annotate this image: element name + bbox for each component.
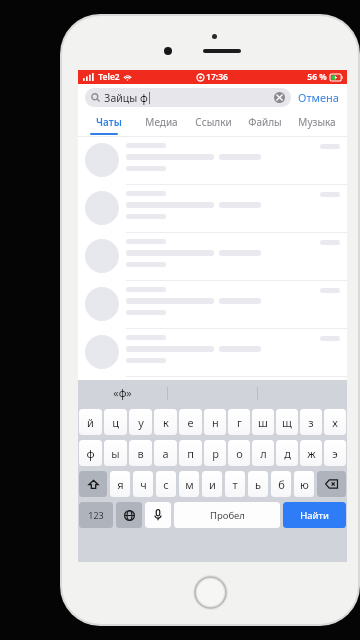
staticText: ы (111, 446, 120, 461)
button[interactable]: ь (248, 471, 268, 497)
staticText: т (232, 477, 238, 492)
button[interactable]: Dictation (145, 502, 171, 528)
staticText: в (137, 446, 144, 461)
staticText: Файлы (248, 115, 282, 129)
button[interactable]: а (154, 440, 177, 466)
button[interactable] (78, 137, 347, 184)
button[interactable]: я (110, 471, 130, 497)
staticText: о (236, 446, 243, 461)
staticText: н (212, 415, 219, 430)
button[interactable]: й (79, 409, 102, 435)
staticText: ц (112, 415, 119, 430)
staticText: «ф» (113, 386, 132, 400)
button[interactable]: в (129, 440, 152, 466)
staticText: ж (307, 446, 316, 461)
button[interactable]: Медиа (135, 111, 187, 133)
button[interactable]: Отмена (297, 87, 340, 108)
staticText: г (237, 415, 242, 430)
staticText: е (187, 415, 194, 430)
button[interactable]: Зайцы ф (85, 88, 291, 107)
staticText: Музыка (298, 115, 336, 129)
staticText: Чаты (96, 115, 122, 129)
button[interactable]: 123 (79, 502, 113, 528)
button[interactable]: «ф» (78, 380, 167, 406)
button[interactable]: Ссылки (187, 111, 239, 133)
button[interactable] (78, 281, 347, 328)
button[interactable]: м (179, 471, 199, 497)
staticText: м (185, 477, 194, 492)
staticText: ф (86, 446, 95, 461)
staticText: Зайцы ф (104, 91, 148, 105)
staticText: 56 % (307, 71, 327, 83)
button[interactable]: п (179, 440, 202, 466)
staticText: э (332, 446, 338, 461)
staticText: Медиа (145, 115, 178, 129)
button[interactable]: ш (252, 409, 274, 435)
staticText: 17:36 (206, 71, 228, 83)
button[interactable]: ф (79, 440, 102, 466)
button[interactable]: л (252, 440, 274, 466)
staticText: Tele2 (98, 71, 120, 83)
button[interactable]: е (179, 409, 202, 435)
button[interactable]: Чаты (82, 111, 135, 133)
button[interactable] (78, 185, 347, 232)
staticText: л (260, 446, 267, 461)
button[interactable]: ж (300, 440, 322, 466)
staticText: Отмена (298, 90, 339, 105)
staticText: Найти (300, 509, 329, 522)
button[interactable]: к (154, 409, 177, 435)
staticText: у (138, 415, 144, 430)
staticText: с (163, 477, 169, 492)
button[interactable]: Backspace (317, 471, 346, 497)
button[interactable]: Найти (283, 502, 346, 528)
button[interactable]: Shift (79, 471, 107, 497)
staticText: х (332, 415, 338, 430)
button[interactable]: о (228, 440, 250, 466)
button[interactable] (78, 233, 347, 280)
staticText: Ссылки (195, 115, 232, 129)
staticText: щ (282, 415, 292, 430)
staticText: й (87, 415, 94, 430)
button[interactable]: ы (104, 440, 127, 466)
button[interactable]: ч (133, 471, 153, 497)
button[interactable]: р (204, 440, 226, 466)
button[interactable]: д (276, 440, 298, 466)
staticText: ч (140, 477, 147, 492)
button[interactable]: и (202, 471, 222, 497)
button[interactable]: х (324, 409, 346, 435)
button[interactable]: э (324, 440, 346, 466)
button[interactable]: з (300, 409, 322, 435)
button[interactable]: ю (294, 471, 314, 497)
staticText: ш (258, 415, 268, 430)
button[interactable]: щ (276, 409, 298, 435)
button[interactable]: Home (193, 575, 228, 610)
button[interactable]: Change keyboard (116, 502, 142, 528)
staticText: ь (255, 477, 261, 492)
staticText: к (163, 415, 169, 430)
staticText: Пробел (210, 509, 245, 522)
staticText: и (209, 477, 216, 492)
button[interactable]: с (156, 471, 176, 497)
button[interactable]: б (271, 471, 291, 497)
staticText: я (117, 477, 124, 492)
staticText: п (187, 446, 194, 461)
staticText: д (284, 446, 291, 461)
staticText: б (278, 477, 285, 492)
button[interactable]: у (129, 409, 152, 435)
staticText: ю (300, 477, 309, 492)
staticText: а (162, 446, 169, 461)
button[interactable]: Пробел (174, 502, 280, 528)
button[interactable]: Clear (274, 92, 285, 103)
button[interactable]: т (225, 471, 245, 497)
button[interactable]: ц (104, 409, 127, 435)
staticText: р (212, 446, 219, 461)
button[interactable]: Файлы (239, 111, 291, 133)
button[interactable]: н (204, 409, 226, 435)
button[interactable]: Музыка (291, 111, 343, 133)
staticText: 123 (88, 509, 104, 521)
button[interactable] (78, 329, 347, 376)
button[interactable]: г (228, 409, 250, 435)
staticText: з (308, 415, 314, 430)
